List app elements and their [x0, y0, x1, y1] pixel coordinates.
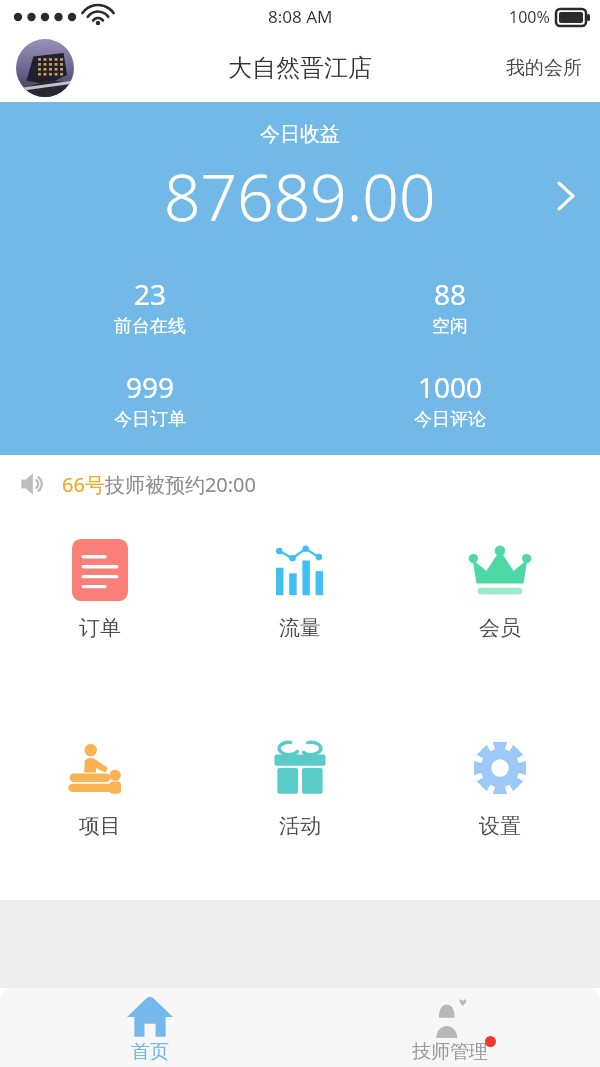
button[interactable]: 87689.00: [0, 153, 600, 239]
button[interactable]: 流量: [200, 533, 400, 645]
staticText: 技师管理: [412, 1040, 488, 1064]
staticText: 1000: [418, 368, 483, 406]
staticText: 今日订单: [114, 408, 186, 431]
staticText: 前台在线: [114, 315, 186, 338]
staticText: 999: [126, 368, 175, 406]
button[interactable]: 技师管理: [300, 988, 600, 1067]
staticText: 23: [134, 275, 167, 313]
button[interactable]: 设置: [400, 731, 600, 843]
button[interactable]: 23: [0, 275, 300, 338]
button[interactable]: 1000: [300, 368, 600, 431]
staticText: 今日收益: [0, 122, 600, 147]
staticText: 88: [434, 275, 467, 313]
staticText: 流量: [279, 615, 321, 641]
staticText: 空闲: [432, 315, 468, 338]
staticText: 设置: [479, 813, 521, 839]
button[interactable]: 66号技师被预约20:00: [0, 455, 600, 513]
button[interactable]: 首页: [0, 988, 300, 1067]
staticText: 今日评论: [414, 408, 486, 431]
staticText: 会员: [479, 615, 521, 641]
button[interactable]: 我的会所: [488, 46, 600, 90]
staticText: 100%: [509, 6, 550, 28]
staticText: 首页: [131, 1040, 169, 1064]
staticText: 订单: [79, 615, 121, 641]
button[interactable]: 活动: [200, 731, 400, 843]
staticText: 我的会所: [506, 56, 582, 80]
staticText: 8:08 AM: [268, 5, 333, 28]
button[interactable]: 会员: [400, 533, 600, 645]
button[interactable]: 88: [300, 275, 600, 338]
staticText: 活动: [279, 813, 321, 839]
staticText: 87689.00: [164, 153, 436, 239]
button[interactable]: 项目: [0, 731, 200, 843]
staticText: 66号技师被预约20:00: [62, 471, 256, 498]
button[interactable]: 999: [0, 368, 300, 431]
staticText: 大自然晋江店: [228, 53, 372, 83]
button[interactable]: 订单: [0, 533, 200, 645]
button[interactable]: Profile avatar: [16, 39, 74, 97]
staticText: 项目: [79, 813, 121, 839]
